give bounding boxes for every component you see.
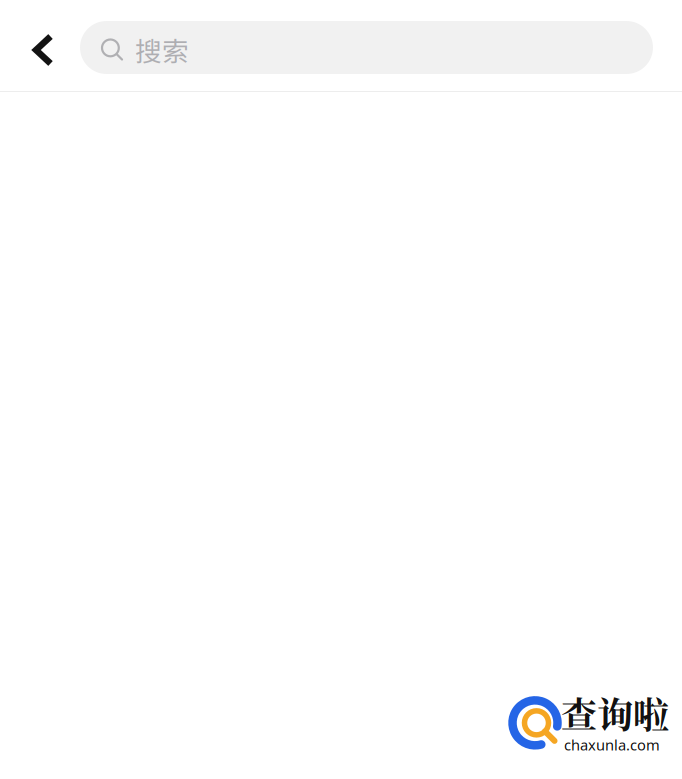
staticText: 查询啦 — [561, 687, 669, 739]
button[interactable]: Back — [19, 26, 65, 74]
staticText: chaxunla.com — [564, 735, 660, 755]
button[interactable]: 搜索 — [80, 21, 653, 74]
staticText: 搜索 — [135, 30, 189, 69]
